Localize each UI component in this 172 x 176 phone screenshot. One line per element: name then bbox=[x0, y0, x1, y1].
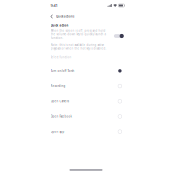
button[interactable]: Open Facebook bbox=[50, 109, 125, 124]
button[interactable]: Recording bbox=[50, 78, 125, 94]
staticText: Open app bbox=[50, 130, 64, 133]
staticText: Turn on/off Torch bbox=[50, 69, 74, 73]
button[interactable]: Open Camera bbox=[50, 94, 125, 109]
staticText: Open Camera bbox=[50, 99, 68, 103]
staticText: When the screen is off, press and hold t… bbox=[50, 29, 106, 50]
staticText: Open Facebook bbox=[50, 115, 71, 118]
button[interactable]: Quick action bbox=[113, 33, 127, 38]
staticText: Quick actions bbox=[56, 15, 74, 18]
button[interactable]: Turn on/off Torch bbox=[50, 63, 125, 78]
button[interactable]: Open app bbox=[50, 124, 125, 139]
staticText: 9:41 bbox=[50, 3, 57, 8]
staticText: Recording bbox=[50, 84, 65, 88]
staticText: Quick action bbox=[50, 24, 68, 27]
button[interactable]: Quick actions bbox=[50, 13, 74, 20]
staticText: Select function bbox=[50, 55, 71, 59]
